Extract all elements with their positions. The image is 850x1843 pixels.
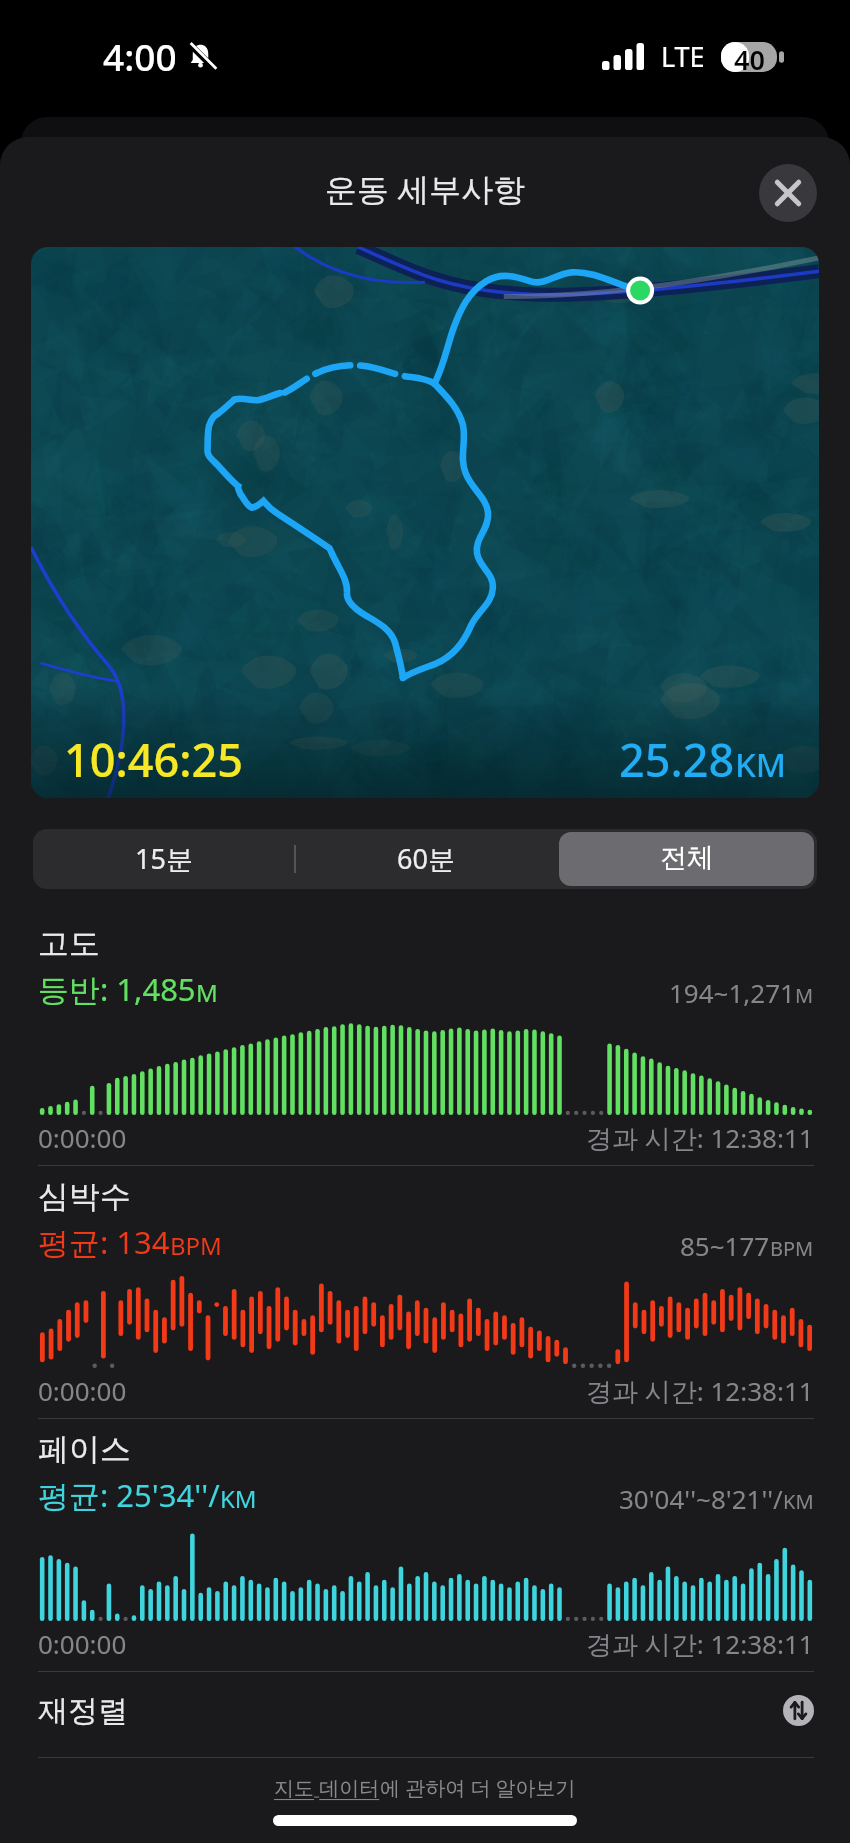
staticText: 고도 (38, 924, 100, 963)
staticText: M (795, 982, 814, 1009)
staticText: 에 관하여 더 알아보기 (380, 1774, 576, 1801)
staticText: M (196, 976, 218, 1009)
staticText: 평균: 134 (38, 1221, 170, 1263)
staticText: 운동 세부사항 (325, 167, 526, 211)
staticText: 10:46:25 (64, 729, 243, 790)
staticText: LTE (661, 38, 705, 75)
button[interactable]: 60분 (298, 832, 553, 886)
staticText: BPM (170, 1229, 222, 1262)
staticText: 전체 (660, 841, 714, 875)
staticText: 0:00:00 (38, 1373, 127, 1408)
staticText: 지도 데이터 (274, 1774, 380, 1801)
staticText: 평균: 25'34''/ (38, 1474, 220, 1516)
staticText: 등반: 1,485 (38, 968, 196, 1010)
staticText: KM (783, 1488, 814, 1515)
staticText: 경과 시간: 12:38:11 (586, 1373, 814, 1409)
staticText: 페이스 (38, 1430, 131, 1469)
button[interactable]: Route map (31, 247, 819, 798)
button[interactable]: 재정렬 (38, 1668, 814, 1753)
staticText: 재정렬 (38, 1692, 128, 1730)
staticText: 30'04''~8'21''/ (619, 1481, 783, 1516)
staticText: 60분 (397, 840, 455, 877)
button[interactable]: Close (759, 164, 817, 222)
staticText: 심박수 (38, 1177, 131, 1216)
button[interactable]: 15분 (36, 832, 292, 886)
staticText: 194~1,271 (669, 975, 795, 1010)
staticText: 4:00 (103, 31, 177, 81)
staticText: 경과 시간: 12:38:11 (586, 1626, 814, 1662)
staticText: 0:00:00 (38, 1626, 127, 1661)
staticText: KM (735, 742, 787, 787)
staticText: KM (220, 1482, 257, 1515)
staticText: 0:00:00 (38, 1120, 127, 1155)
button[interactable]: 전체 (559, 832, 814, 886)
staticText: 15분 (135, 840, 193, 877)
staticText: BPM (770, 1235, 814, 1262)
staticText: 85~177 (680, 1228, 770, 1263)
staticText: 경과 시간: 12:38:11 (586, 1120, 814, 1156)
staticText: 40 (734, 41, 765, 71)
button[interactable]: 지도 데이터 (274, 1774, 576, 1801)
staticText: 25.28 (619, 729, 735, 790)
